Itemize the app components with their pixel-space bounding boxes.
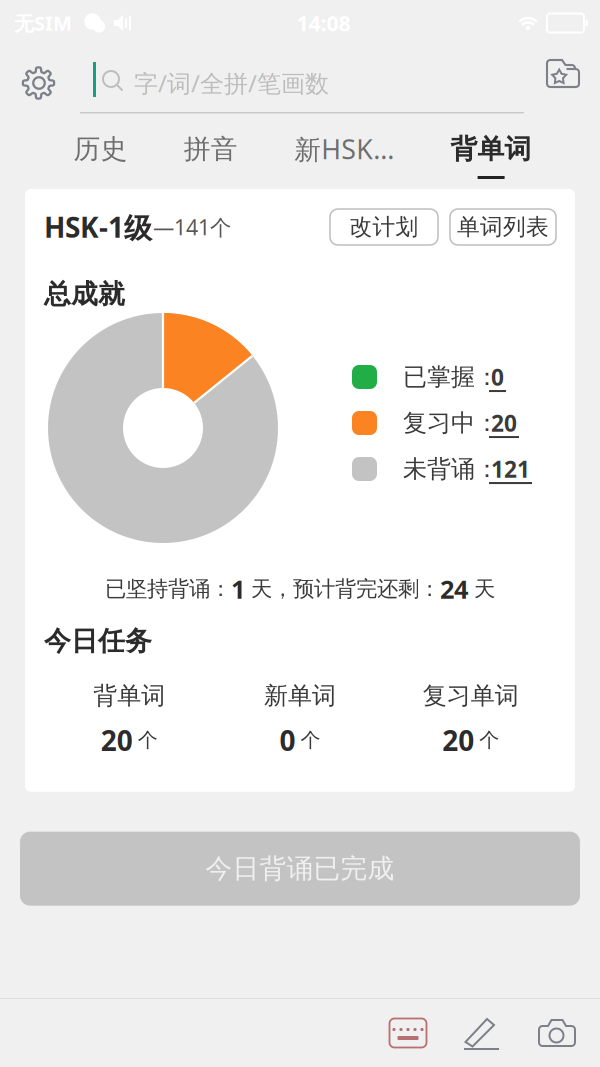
staticText: 字/词/全拼/笔画数 xyxy=(134,67,329,99)
staticText: 总成就 xyxy=(44,278,125,310)
staticText: 历史 xyxy=(73,133,127,165)
staticText: 新单词 xyxy=(264,681,336,710)
staticText: 20 xyxy=(442,721,474,759)
staticText: 14:08 xyxy=(296,9,350,37)
staticText: 已掌握： xyxy=(403,362,499,392)
button[interactable]: 设置 xyxy=(21,66,56,100)
staticText: 今日任务 xyxy=(44,625,152,657)
staticText: 复习中： xyxy=(403,408,499,438)
button[interactable]: 键盘输入 xyxy=(386,1015,430,1051)
staticText: 背单词 xyxy=(451,133,532,165)
staticText: 拼音 xyxy=(184,133,238,165)
staticText: 121 xyxy=(491,454,530,484)
button[interactable]: 单词列表 xyxy=(450,209,556,245)
staticText: 20 xyxy=(491,408,517,438)
button[interactable]: 拍照识别 xyxy=(538,1015,576,1051)
staticText: 今日背诵已完成 xyxy=(205,852,394,885)
staticText: 复习单词 xyxy=(423,681,519,710)
staticText: 新HSK... xyxy=(294,131,394,167)
staticText: 背单词 xyxy=(93,681,165,710)
button[interactable]: 今日背诵已完成 xyxy=(20,832,580,906)
button[interactable]: 拼音 xyxy=(184,121,238,183)
button[interactable]: 历史 xyxy=(73,121,127,183)
staticText: 个 xyxy=(479,728,499,752)
staticText: 24 xyxy=(440,572,468,606)
staticText: 0 xyxy=(491,362,504,392)
button[interactable]: 背单词 xyxy=(451,121,532,183)
staticText: HSK-1级 xyxy=(44,208,152,246)
staticText: 无SIM xyxy=(14,10,72,36)
staticText: 天，预计背完还剩： xyxy=(245,576,440,602)
staticText: 天 xyxy=(468,576,495,602)
staticText: 单词列表 xyxy=(457,213,549,241)
staticText: —141个 xyxy=(153,213,231,241)
staticText: 改计划 xyxy=(349,213,418,241)
button[interactable]: 改计划 xyxy=(330,209,438,245)
staticText: 未背诵： xyxy=(403,454,499,484)
staticText: 个 xyxy=(300,728,320,752)
staticText: 已坚持背诵： xyxy=(105,576,231,602)
button[interactable]: 手写输入 xyxy=(462,1014,502,1052)
staticText: 20 xyxy=(101,721,133,759)
button[interactable]: 收藏夹 xyxy=(546,56,580,90)
button[interactable]: 新HSK... xyxy=(294,121,394,183)
staticText: 个 xyxy=(138,728,158,752)
staticText: 0 xyxy=(279,721,295,759)
staticText: 1 xyxy=(231,572,245,606)
